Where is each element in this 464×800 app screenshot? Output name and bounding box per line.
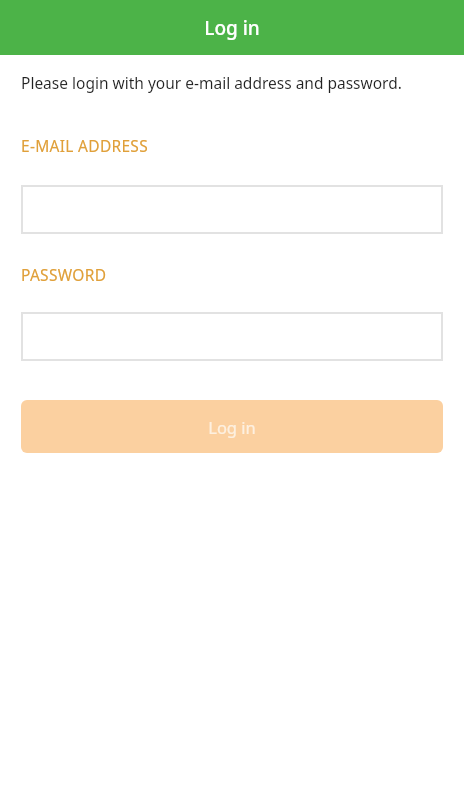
staticText: PASSWORD [21,264,107,285]
staticText: Log in [208,416,256,438]
button[interactable]: Text input field [21,185,443,234]
staticText: Log in [204,15,260,41]
staticText: E-MAIL ADDRESS [21,135,148,156]
staticText: Please login with your e-mail address an… [21,72,402,93]
button[interactable]: Text input field [21,312,443,361]
button[interactable]: Log in [21,400,443,453]
